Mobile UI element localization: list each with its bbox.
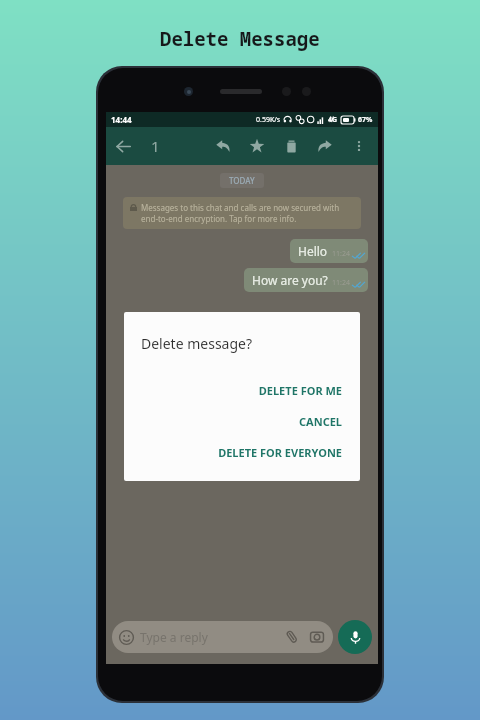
staticText: DELETE FOR ME (258, 383, 342, 398)
button[interactable]: Voice message (338, 620, 372, 654)
staticText: How are you? (252, 272, 328, 288)
button[interactable]: 1 (140, 127, 170, 165)
staticText: Delete Message (160, 26, 320, 52)
staticText: Delete message? (141, 334, 253, 353)
staticText: TODAY (229, 175, 255, 186)
button[interactable]: Forward (308, 127, 342, 165)
staticText: 4G (328, 115, 338, 125)
button[interactable]: Messages to this chat and calls are now … (130, 202, 354, 224)
staticText: 67% (358, 115, 373, 125)
button[interactable]: DELETE FOR ME (124, 375, 360, 406)
button[interactable]: Reply (206, 127, 240, 165)
button[interactable]: Type a reply (119, 621, 326, 653)
button[interactable]: Attach (283, 628, 301, 646)
button[interactable]: Camera (308, 628, 326, 646)
button[interactable]: More options (342, 127, 376, 165)
button[interactable]: DELETE FOR EVERYONE (124, 437, 360, 468)
button[interactable]: How are you? (252, 272, 362, 288)
button[interactable]: Back (106, 127, 140, 165)
staticText: Hello (298, 243, 328, 259)
staticText: Type a reply (140, 629, 208, 645)
button[interactable]: Delete (274, 127, 308, 165)
staticText: 1 (151, 136, 160, 156)
button[interactable]: CANCEL (124, 406, 360, 437)
button[interactable]: Star (240, 127, 274, 165)
staticText: 11:24 (332, 278, 350, 288)
staticText: CANCEL (299, 414, 342, 429)
button[interactable]: Hello (298, 243, 362, 259)
staticText: 11:24 (332, 249, 350, 259)
staticText: 0.59K/s (256, 115, 281, 125)
staticText: Messages to this chat and calls are now … (141, 202, 354, 224)
staticText: 14:44 (111, 114, 132, 125)
staticText: DELETE FOR EVERYONE (218, 445, 342, 460)
